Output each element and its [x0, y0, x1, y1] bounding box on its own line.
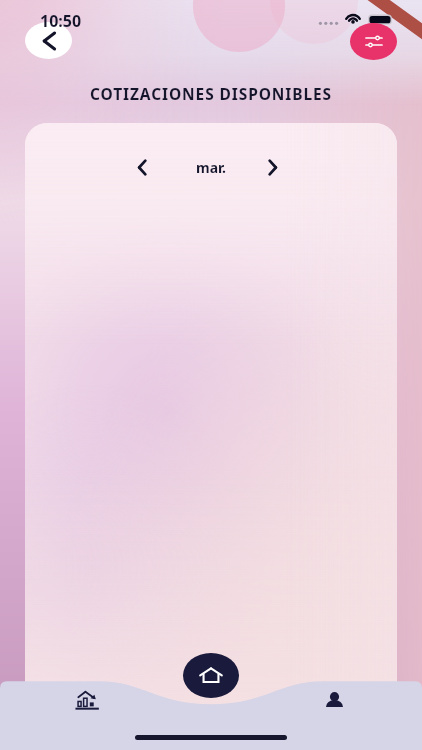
- button[interactable]: Filter: [350, 23, 397, 60]
- button[interactable]: Profile: [310, 681, 359, 719]
- button[interactable]: Home: [183, 653, 239, 698]
- button[interactable]: Back: [25, 22, 72, 59]
- staticText: mar.: [196, 158, 226, 177]
- button[interactable]: Next month: [251, 145, 295, 189]
- staticText: 10:50: [40, 10, 82, 32]
- button[interactable]: Statistics: [63, 681, 112, 719]
- staticText: COTIZACIONES DISPONIBLES: [0, 83, 422, 104]
- button[interactable]: Previous month: [120, 145, 164, 189]
